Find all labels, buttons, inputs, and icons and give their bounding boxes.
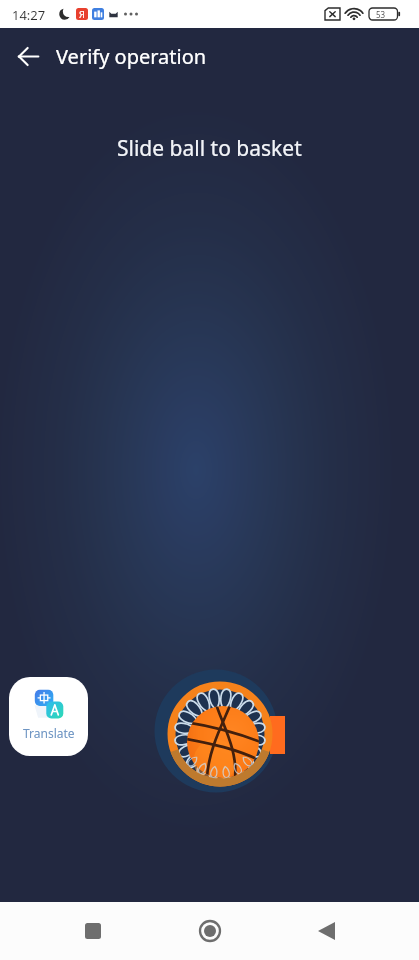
button[interactable]: Back <box>302 907 350 955</box>
button[interactable]: Translate <box>9 677 88 756</box>
staticText: Verify operation <box>56 43 207 70</box>
staticText: Slide ball to basket <box>117 134 302 163</box>
staticText: 53 <box>376 9 386 20</box>
staticText: Translate <box>23 725 75 741</box>
staticText: Я <box>79 8 85 20</box>
button[interactable]: Back <box>0 28 56 84</box>
button[interactable]: Home <box>186 907 234 955</box>
button[interactable]: Recents <box>69 907 117 955</box>
staticText: 14:27 <box>12 6 46 24</box>
